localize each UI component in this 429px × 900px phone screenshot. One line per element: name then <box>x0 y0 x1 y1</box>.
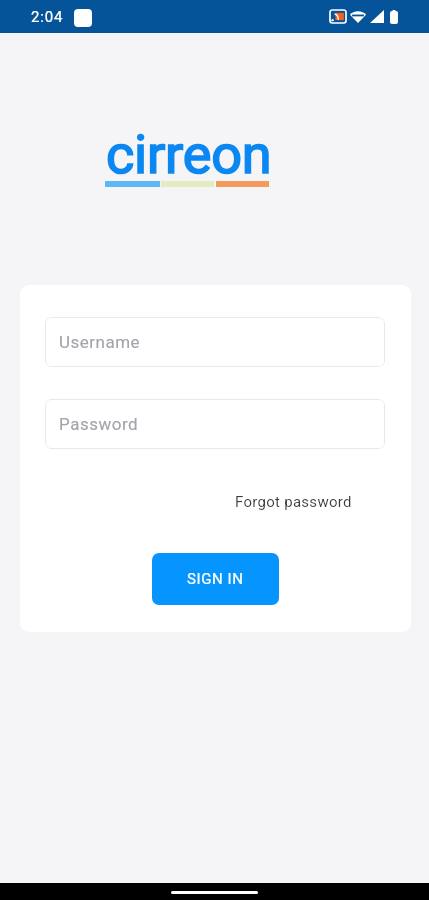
staticText: 2:04 <box>31 8 64 26</box>
other: Wi-Fi signal <box>350 10 366 23</box>
button[interactable]: Forgot password <box>235 493 352 511</box>
button[interactable]: Username <box>45 317 385 367</box>
other: Home <box>171 891 258 894</box>
staticText: SIGN IN <box>187 570 244 588</box>
other: Screen cast active <box>330 10 346 23</box>
button[interactable]: SIGN IN <box>152 553 279 605</box>
other: Mobile signal <box>370 10 384 23</box>
staticText: Password <box>59 414 139 434</box>
other: Battery <box>390 10 398 24</box>
staticText: Username <box>59 332 141 352</box>
staticText: Forgot password <box>235 493 352 511</box>
staticText: cirreon <box>106 123 272 186</box>
button[interactable]: Password <box>45 399 385 449</box>
